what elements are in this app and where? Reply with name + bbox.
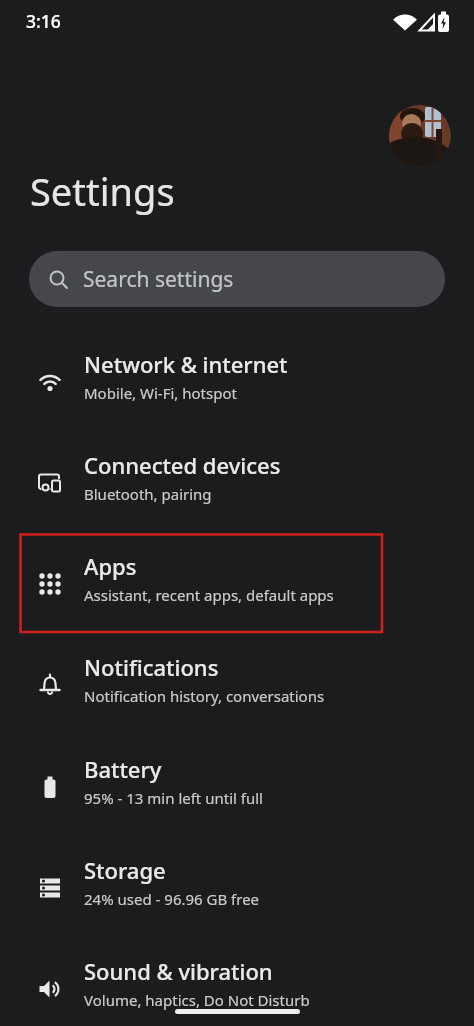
staticText: Bluetooth, pairing <box>84 484 212 504</box>
staticText: Notification history, conversations <box>84 686 325 706</box>
staticText: Mobile, Wi-Fi, hotspot <box>84 383 237 403</box>
staticText: Apps <box>84 551 137 581</box>
button[interactable]: Notifications <box>0 635 474 736</box>
staticText: Sound & vibration <box>84 956 273 986</box>
staticText: 95% - 13 min left until full <box>84 788 263 808</box>
staticText: Network & internet <box>84 349 288 379</box>
button[interactable] <box>389 105 451 167</box>
staticText: Connected devices <box>84 450 281 480</box>
staticText: Assistant, recent apps, default apps <box>84 585 334 605</box>
staticText: Notifications <box>84 652 219 682</box>
button[interactable]: Apps <box>0 534 474 635</box>
button[interactable]: Storage <box>0 838 474 939</box>
staticText: 3:16 <box>26 9 61 33</box>
button[interactable]: Sound & vibration <box>0 939 474 1026</box>
button[interactable]: Network & internet <box>0 332 474 433</box>
staticText: Storage <box>84 855 166 885</box>
button[interactable]: Connected devices <box>0 433 474 534</box>
button[interactable]: Search settings <box>29 251 445 307</box>
staticText: Settings <box>30 165 175 217</box>
button[interactable]: Battery <box>0 737 474 838</box>
staticText: 24% used - 96.96 GB free <box>84 889 260 909</box>
staticText: Battery <box>84 754 162 784</box>
staticText: Volume, haptics, Do Not Disturb <box>84 990 310 1010</box>
staticText: Search settings <box>83 265 234 294</box>
